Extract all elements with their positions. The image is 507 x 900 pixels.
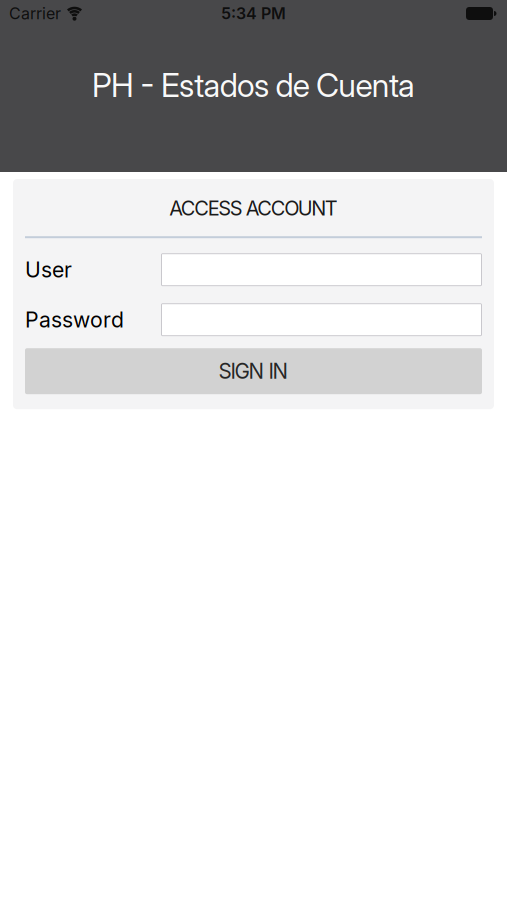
staticText: Password [25,307,124,333]
button[interactable]: SIGN IN [25,348,482,394]
button[interactable]: Password text field [161,303,482,336]
button[interactable]: User text field [161,253,482,286]
staticText: User [25,257,72,283]
staticText: 5:34 PM [221,4,286,23]
staticText: Carrier [9,4,61,23]
staticText: SIGN IN [218,359,288,384]
staticText: PH - Estados de Cuenta [92,66,415,105]
staticText: ACCESS ACCOUNT [169,196,338,220]
